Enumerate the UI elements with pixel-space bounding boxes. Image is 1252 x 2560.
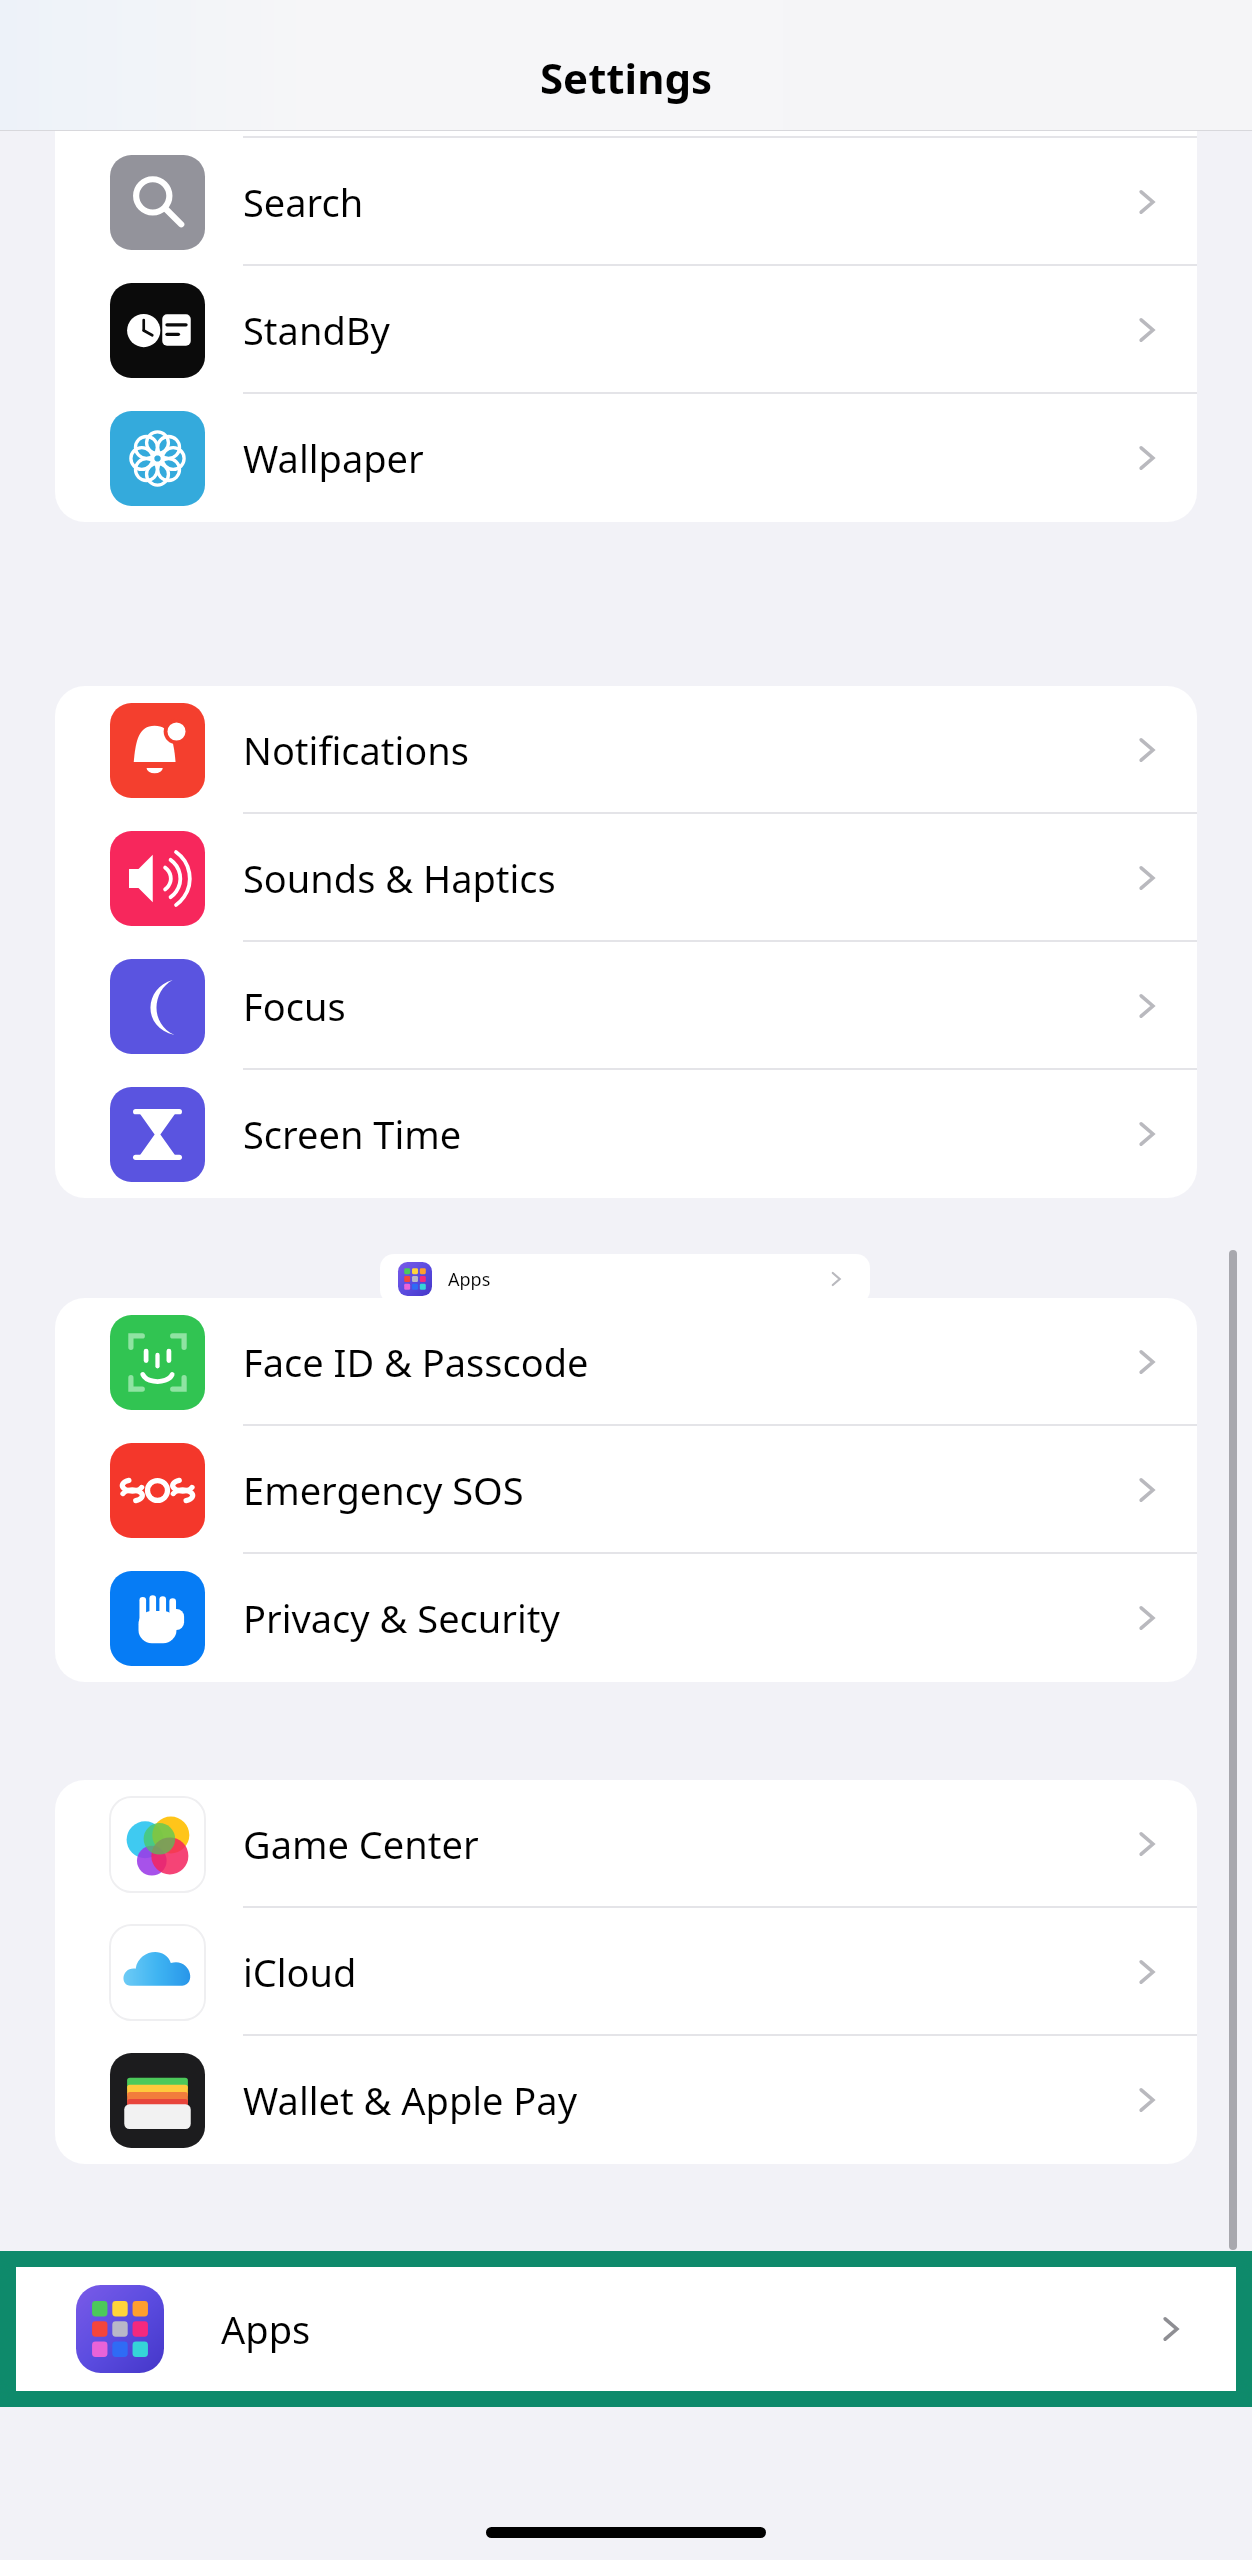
button[interactable]: iCloud: [55, 1908, 1197, 2036]
staticText: Search: [243, 176, 364, 228]
button[interactable]: Search: [55, 138, 1197, 266]
staticText: Screen Time: [243, 1108, 462, 1160]
button[interactable]: Face ID & Passcode: [55, 1298, 1197, 1426]
staticText: iCloud: [243, 1946, 357, 1998]
button[interactable]: Sounds & Haptics: [55, 814, 1197, 942]
staticText: Game Center: [243, 1818, 479, 1870]
staticText: Settings: [0, 49, 1252, 106]
staticText: Notifications: [243, 724, 470, 776]
button[interactable]: Home Screen & App Library: [55, 10, 1197, 138]
button[interactable]: StandBy: [55, 266, 1197, 394]
staticText: Sounds & Haptics: [243, 852, 556, 904]
button[interactable]: Notifications: [55, 686, 1197, 814]
button[interactable]: Privacy & Security: [55, 1554, 1197, 1682]
staticText: Apps: [221, 2303, 311, 2355]
button[interactable]: Game Center: [55, 1780, 1197, 1908]
button[interactable]: Focus: [55, 942, 1197, 1070]
staticText: Emergency SOS: [243, 1464, 524, 1516]
staticText: Privacy & Security: [243, 1592, 560, 1644]
staticText: StandBy: [243, 304, 390, 356]
staticText: Focus: [243, 980, 346, 1032]
staticText: Face ID & Passcode: [243, 1336, 589, 1388]
button[interactable]: Screen Time: [55, 1070, 1197, 1198]
staticText: Home Screen & App Library: [243, 48, 735, 100]
staticText: Wallet & Apple Pay: [243, 2074, 578, 2126]
button[interactable]: Emergency SOS: [55, 1426, 1197, 1554]
button[interactable]: Apps: [380, 1254, 870, 1304]
button[interactable]: Apps: [16, 2267, 1236, 2391]
button[interactable]: Wallpaper: [55, 394, 1197, 522]
staticText: Wallpaper: [243, 432, 424, 484]
button[interactable]: Wallet & Apple Pay: [55, 2036, 1197, 2164]
staticText: Apps: [448, 1267, 491, 1292]
